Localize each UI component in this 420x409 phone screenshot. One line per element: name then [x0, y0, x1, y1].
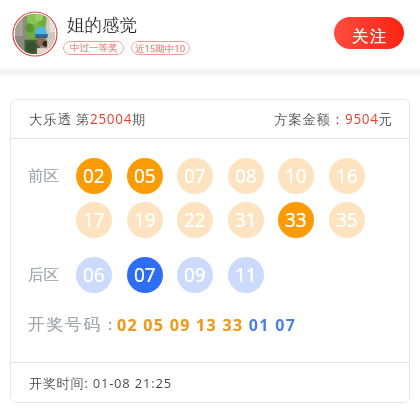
- button[interactable]: 10: [278, 158, 314, 194]
- staticText: 关注: [352, 26, 388, 47]
- staticText: 17: [83, 207, 105, 233]
- button[interactable]: 33: [278, 202, 314, 238]
- button[interactable]: 08: [228, 158, 264, 194]
- staticText: 姐的感觉: [67, 14, 137, 36]
- button[interactable]: 31: [228, 202, 264, 238]
- staticText: 前区: [28, 166, 59, 186]
- staticText: 16: [336, 163, 358, 189]
- staticText: 05: [134, 163, 156, 189]
- staticText: 22: [184, 207, 206, 233]
- staticText: 11: [235, 262, 257, 288]
- button[interactable]: 16: [329, 158, 365, 194]
- button[interactable]: 07: [177, 158, 213, 194]
- staticText: 10: [285, 163, 307, 189]
- staticText: 开奖号码：: [28, 314, 121, 335]
- button[interactable]: 35: [329, 202, 365, 238]
- staticText: 后区: [28, 265, 59, 285]
- staticText: 02: [83, 163, 105, 189]
- button[interactable]: 19: [127, 202, 163, 238]
- staticText: 33: [285, 207, 307, 233]
- button[interactable]: 11: [228, 257, 264, 293]
- staticText: 大乐透 第25004期: [29, 110, 147, 128]
- staticText: 09: [184, 262, 206, 288]
- button[interactable]: 02: [76, 158, 112, 194]
- staticText: 02 05 09 13 33 01 07: [117, 314, 297, 336]
- staticText: 08: [235, 163, 257, 189]
- staticText: 19: [134, 207, 156, 233]
- button[interactable]: 09: [177, 257, 213, 293]
- button[interactable]: 关注: [334, 17, 404, 49]
- button[interactable]: 22: [177, 202, 213, 238]
- staticText: 中过一等奖: [70, 42, 118, 54]
- staticText: 31: [235, 207, 257, 233]
- staticText: 07: [184, 163, 206, 189]
- staticText: 07: [134, 262, 156, 288]
- button[interactable]: User avatar: [12, 11, 58, 57]
- button[interactable]: 06: [76, 257, 112, 293]
- staticText: 近15期中10: [135, 42, 186, 55]
- button[interactable]: 17: [76, 202, 112, 238]
- staticText: 方案金额：9504元: [274, 110, 393, 128]
- button[interactable]: 07: [127, 257, 163, 293]
- staticText: 35: [336, 207, 358, 233]
- button[interactable]: 05: [127, 158, 163, 194]
- staticText: 开奖时间: 01-08 21:25: [29, 374, 173, 392]
- button[interactable]: 中过一等奖: [63, 41, 124, 55]
- button[interactable]: 近15期中10: [131, 41, 190, 55]
- staticText: 06: [83, 262, 105, 288]
